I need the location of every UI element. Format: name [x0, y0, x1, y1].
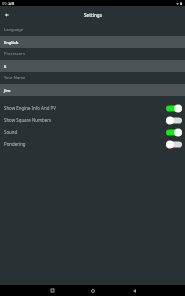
staticText: English: [4, 40, 19, 45]
button[interactable]: 6: [0, 60, 185, 72]
staticText: 6: [4, 64, 7, 69]
button[interactable]: Show Square Numbers: [0, 114, 185, 126]
staticText: Settings: [84, 12, 102, 18]
button[interactable]: Recent apps: [45, 285, 59, 296]
staticText: Show Square Numbers: [4, 117, 166, 123]
button[interactable]: Jim: [0, 84, 185, 96]
button[interactable]: Show Engine Info And PV: [0, 102, 185, 114]
staticText: Show Engine Info And PV: [4, 105, 166, 111]
staticText: Pondering: [4, 141, 166, 147]
staticText: 09:22: [2, 1, 13, 6]
staticText: Sound: [4, 129, 166, 135]
button[interactable]: Home: [86, 285, 100, 296]
staticText: Processors: [4, 51, 25, 57]
staticText: Language: [4, 27, 24, 33]
staticText: Your Name: [4, 75, 26, 81]
button[interactable]: Back: [1, 9, 13, 21]
button[interactable]: Sound: [0, 126, 185, 138]
staticText: Jim: [4, 88, 11, 93]
button[interactable]: English: [0, 36, 185, 48]
button[interactable]: Back: [127, 285, 141, 296]
button[interactable]: Pondering: [0, 138, 185, 150]
